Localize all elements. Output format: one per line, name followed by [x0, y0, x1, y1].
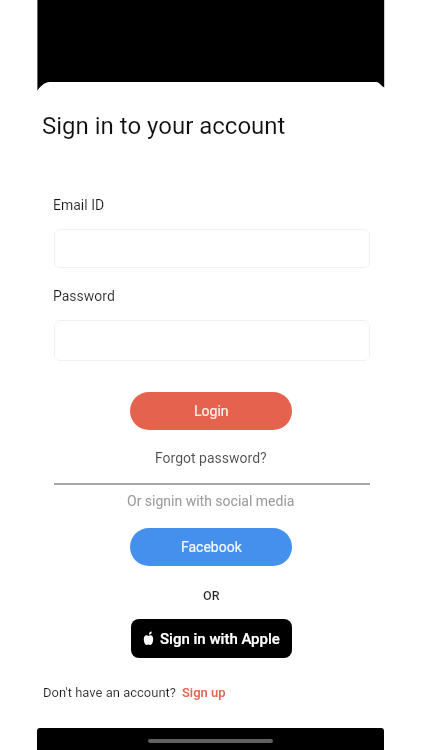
button[interactable]: Facebook [130, 528, 292, 566]
staticText: Password [53, 288, 115, 304]
staticText: Login [194, 403, 229, 419]
staticText: Email ID [53, 197, 105, 213]
staticText: Sign in with Apple [160, 630, 280, 648]
button[interactable]: Sign in with Apple [131, 619, 292, 658]
staticText: Sign up [182, 685, 226, 700]
button[interactable]: Password input [54, 320, 370, 361]
staticText: Don't have an account? [43, 685, 176, 700]
button[interactable]: Sign up [182, 685, 226, 700]
staticText: Forgot password? [155, 450, 267, 466]
staticText: OR [203, 588, 220, 603]
button[interactable]: Forgot password? [0, 446, 422, 470]
staticText: Or signin with social media [127, 493, 295, 509]
staticText: Facebook [181, 539, 242, 555]
staticText: Sign in to your account [42, 112, 286, 140]
button[interactable]: Email ID input [54, 229, 370, 268]
button[interactable]: Login [130, 392, 292, 430]
